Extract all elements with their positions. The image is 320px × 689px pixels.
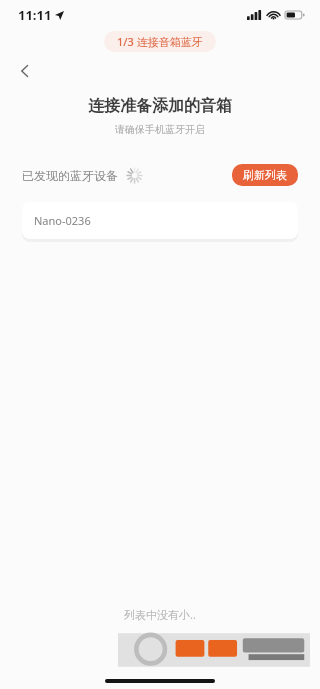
staticText: 请确保手机蓝牙开启 — [115, 123, 205, 136]
staticText: Nano-0236 — [34, 213, 91, 228]
button[interactable]: 1/3 连接音箱蓝牙 — [104, 31, 216, 52]
staticText: 列表中没有小.. — [124, 607, 196, 622]
staticText: 已发现的蓝牙设备 — [22, 168, 118, 183]
staticText: 连接准备添加的音箱 — [88, 96, 232, 116]
button[interactable]: Back — [8, 54, 42, 88]
staticText: 刷新列表 — [243, 168, 287, 182]
button[interactable]: 刷新列表 — [232, 164, 298, 186]
staticText: 1/3 连接音箱蓝牙 — [117, 34, 203, 49]
staticText: 11:11 — [18, 6, 52, 24]
button[interactable]: Nano-0236 — [22, 202, 298, 239]
